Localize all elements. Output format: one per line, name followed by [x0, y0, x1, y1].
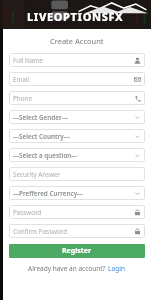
button[interactable]: Security Answer [9, 167, 145, 181]
button[interactable]: Confirm Password [9, 224, 145, 238]
staticText: Password [13, 208, 133, 217]
staticText: Already have an account? [28, 264, 108, 273]
button[interactable]: Full Name [9, 53, 145, 67]
other: Full name [134, 57, 141, 64]
button[interactable]: Login [108, 264, 126, 273]
staticText: ---Preffered Currency--- [13, 189, 133, 198]
button[interactable]: ---Select a question--- [9, 148, 145, 162]
other: Password [134, 228, 141, 235]
staticText: Email [13, 75, 133, 84]
staticText: ---Select Gender--- [13, 113, 133, 122]
button[interactable]: Phone [9, 91, 145, 105]
button[interactable]: Register [9, 244, 145, 258]
other: Phone [134, 95, 141, 102]
button[interactable]: ---Preffered Currency--- [9, 186, 145, 200]
button[interactable]: Password [9, 205, 145, 219]
button[interactable]: ---Select Country--- [9, 129, 145, 143]
button[interactable]: Email [9, 72, 145, 86]
staticText: LIVEOPTIONSFX [27, 9, 124, 24]
staticText: ---Select a question--- [13, 151, 133, 160]
other: Open dropdown [134, 190, 141, 197]
other: Open dropdown [134, 114, 141, 121]
button[interactable]: ---Select Gender--- [9, 110, 145, 124]
staticText: Register [62, 246, 92, 256]
other: Email [134, 76, 141, 83]
staticText: Confirm Password [13, 227, 133, 236]
staticText: Phone [13, 94, 133, 103]
staticText: Login [108, 264, 126, 273]
other: Open dropdown [134, 152, 141, 159]
staticText: Create Account [50, 36, 104, 46]
other: Password [134, 209, 141, 216]
staticText: ---Select Country--- [13, 132, 133, 141]
staticText: Full Name [13, 56, 133, 65]
other: Open dropdown [134, 133, 141, 140]
staticText: Security Answer [13, 170, 133, 179]
